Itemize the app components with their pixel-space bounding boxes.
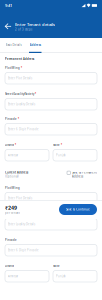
staticText: State (53, 143, 60, 147)
staticText: Amritsar (8, 274, 18, 278)
staticText: * (15, 143, 16, 147)
staticText: * (61, 143, 62, 147)
staticText: Enter Locality Details (8, 102, 35, 106)
staticText: District (5, 143, 14, 147)
button[interactable]: Basic Details (5, 38, 22, 53)
staticText: Enter Plot Details (8, 196, 32, 200)
staticText: Punjab (56, 153, 66, 157)
staticText: * (18, 117, 19, 121)
staticText: Plot/Wing (5, 186, 20, 190)
staticText: ₹249 (5, 204, 17, 211)
button[interactable]: Save & Continue (59, 204, 97, 215)
staticText: Permanent Address (5, 57, 34, 61)
staticText: Enter 6 Digit Pincode (8, 127, 39, 131)
button[interactable]: Address (29, 38, 41, 53)
staticText: Plot/Wing (5, 66, 20, 70)
staticText: Enter Tenant details (15, 22, 55, 27)
staticText: Same as Permanent (72, 171, 97, 174)
staticText: Pincode (5, 117, 17, 121)
staticText: Basic Details (5, 43, 21, 47)
staticText: 9:41 (5, 3, 12, 8)
staticText: Street/Locality/Society (5, 92, 34, 96)
staticText: Street/Locality/Society (5, 212, 34, 216)
staticText: Amritsar (8, 153, 18, 157)
staticText: Pincode (5, 238, 17, 242)
button[interactable]: Back (3, 21, 13, 32)
staticText: Save & Continue (66, 208, 90, 211)
staticText: Enter 6 Digit Pincode (8, 248, 39, 252)
staticText: * (21, 66, 22, 70)
button[interactable]: Same as Permanent (67, 171, 97, 178)
staticText: per tenant (5, 211, 20, 215)
staticText: State (53, 264, 60, 268)
staticText: Current Address (5, 171, 28, 174)
staticText: (Optional) (5, 175, 19, 178)
staticText: Address (30, 43, 41, 47)
staticText: Enter Locality Details (8, 222, 35, 226)
staticText: District (5, 264, 14, 268)
staticText: Address (72, 175, 83, 178)
staticText: Punjab (56, 274, 66, 278)
staticText: 2 of 3 steps (15, 28, 32, 31)
staticText: * (35, 92, 36, 96)
staticText: Enter Plot Details (8, 76, 32, 80)
